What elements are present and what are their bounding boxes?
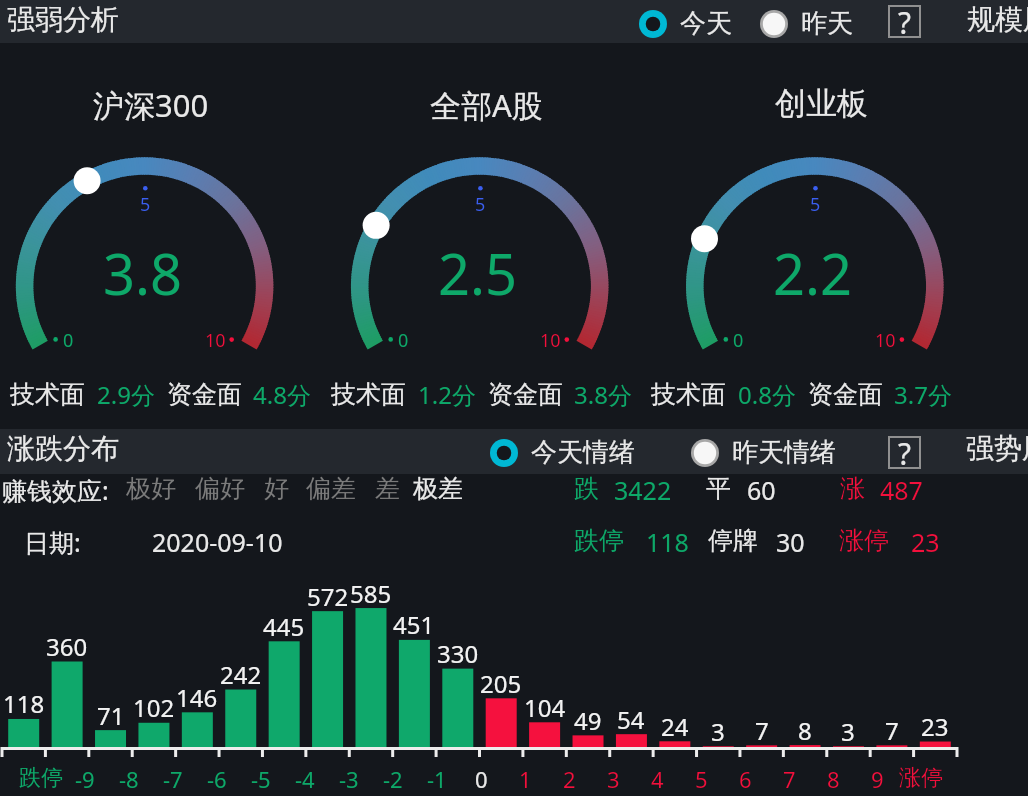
staticText: 7 — [755, 714, 769, 747]
staticText: 偏好 — [195, 473, 245, 504]
staticText: 创业板 — [775, 84, 868, 123]
staticText: 昨天情绪 — [732, 436, 836, 469]
staticText: 涨停 — [839, 525, 889, 556]
staticText: 49 — [574, 704, 602, 737]
staticText: 日期: — [24, 525, 81, 559]
staticText: 4 — [651, 764, 664, 794]
staticText: 技术面 — [331, 379, 406, 410]
staticText: 7 — [885, 714, 899, 747]
staticText: 5 — [810, 192, 821, 217]
staticText: -3 — [339, 764, 359, 794]
staticText: 205 — [480, 667, 522, 700]
staticText: 0 — [733, 328, 744, 353]
staticText: 资金面 — [167, 379, 242, 410]
staticText: 2 — [563, 764, 576, 794]
button[interactable]: Help — [888, 5, 921, 38]
staticText: 0 — [63, 328, 74, 353]
staticText: ? — [898, 433, 912, 466]
staticText: 5 — [695, 764, 708, 794]
staticText: 跌停 — [19, 764, 63, 792]
staticText: 强弱分析 — [7, 2, 119, 37]
staticText: 极差 — [413, 473, 463, 504]
staticText: 118 — [646, 525, 689, 559]
staticText: -8 — [119, 764, 139, 794]
button[interactable]: 今天情绪 — [490, 436, 635, 469]
staticText: -2 — [383, 764, 403, 794]
staticText: 全部A股 — [430, 84, 543, 126]
staticText: 3 — [607, 764, 620, 794]
staticText: 3 — [841, 715, 855, 748]
staticText: 涨跌分布 — [7, 431, 119, 466]
staticText: 跌 — [574, 473, 599, 504]
staticText: 7 — [783, 764, 796, 794]
staticText: -6 — [207, 764, 227, 794]
staticText: 360 — [46, 630, 88, 663]
staticText: 2020-09-10 — [152, 525, 283, 559]
staticText: 3.8 — [103, 235, 183, 311]
staticText: 9 — [871, 764, 884, 794]
staticText: 585 — [350, 577, 392, 610]
staticText: 30 — [776, 525, 805, 559]
staticText: 24 — [661, 710, 689, 743]
staticText: 资金面 — [808, 379, 883, 410]
staticText: 0.8分 — [738, 378, 796, 411]
staticText: 572 — [307, 580, 349, 613]
staticText: 3 — [711, 715, 725, 748]
staticText: 偏差 — [306, 473, 356, 504]
staticText: 6 — [739, 764, 752, 794]
staticText: 规模届 — [967, 2, 1028, 37]
staticText: 差 — [375, 473, 400, 504]
staticText: 451 — [393, 608, 435, 641]
staticText: 技术面 — [651, 379, 726, 410]
staticText: 146 — [176, 681, 218, 714]
staticText: 涨停 — [899, 764, 943, 792]
staticText: 445 — [263, 610, 305, 643]
staticText: 赚钱效应: — [2, 473, 109, 507]
staticText: -5 — [251, 764, 271, 794]
staticText: 沪深300 — [93, 84, 209, 126]
staticText: 1.2分 — [418, 378, 476, 411]
staticText: 104 — [524, 691, 566, 724]
staticText: 3.7分 — [894, 378, 952, 411]
staticText: 8 — [798, 714, 812, 747]
staticText: 5 — [140, 192, 151, 217]
button[interactable]: Help — [888, 436, 921, 469]
staticText: 今天情绪 — [531, 436, 635, 469]
staticText: 强势届 — [966, 431, 1028, 466]
staticText: 技术面 — [10, 379, 85, 410]
staticText: 好 — [264, 473, 289, 504]
staticText: 0 — [475, 764, 488, 794]
staticText: 资金面 — [488, 379, 563, 410]
staticText: 102 — [133, 691, 175, 724]
staticText: 487 — [880, 473, 923, 507]
staticText: 涨 — [840, 473, 865, 504]
staticText: 54 — [617, 703, 645, 736]
staticText: 今天 — [680, 7, 732, 40]
staticText: 10 — [875, 328, 896, 353]
staticText: -7 — [163, 764, 183, 794]
staticText: 2.5 — [438, 235, 518, 311]
staticText: ? — [898, 2, 912, 35]
staticText: 8 — [827, 764, 840, 794]
staticText: 昨天 — [801, 7, 853, 40]
staticText: 3422 — [614, 473, 672, 507]
staticText: 2.2 — [773, 235, 853, 311]
staticText: -1 — [427, 764, 447, 794]
staticText: 60 — [747, 473, 776, 507]
button[interactable]: 今天 — [639, 7, 732, 40]
staticText: 跌停 — [574, 525, 624, 556]
staticText: 5 — [475, 192, 486, 217]
staticText: 118 — [3, 687, 45, 720]
button[interactable]: 昨天情绪 — [691, 436, 836, 469]
staticText: 4.8分 — [253, 378, 311, 411]
staticText: 23 — [911, 525, 940, 559]
staticText: 2.9分 — [97, 378, 155, 411]
staticText: 10 — [205, 328, 226, 353]
staticText: 71 — [97, 699, 125, 732]
staticText: 330 — [437, 637, 479, 670]
staticText: 0 — [398, 328, 409, 353]
button[interactable]: 昨天 — [760, 7, 853, 40]
staticText: 平 — [706, 473, 731, 504]
staticText: 10 — [540, 328, 561, 353]
staticText: 停牌 — [708, 525, 758, 556]
